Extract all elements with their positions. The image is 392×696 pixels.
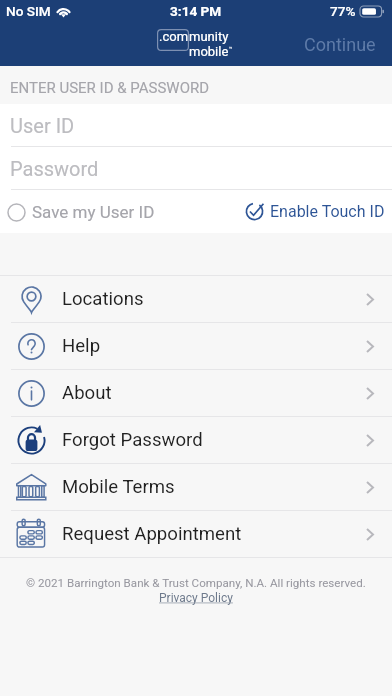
staticText: Privacy Policy [159,591,233,605]
button[interactable]: About [0,370,392,416]
staticText: ™ [229,45,233,52]
staticText: Mobile Terms [62,476,175,498]
staticText: Enable Touch ID [270,202,385,221]
button[interactable]: Request Appointment [0,511,392,557]
staticText: Help [62,335,101,357]
staticText: Request Appointment [62,523,242,545]
staticText: Locations [62,288,144,310]
staticText: Password [10,157,99,180]
button[interactable]: Mobile Terms [0,464,392,510]
staticText: .com [159,29,189,44]
staticText: Continue [304,34,376,55]
button[interactable]: User ID [0,104,392,146]
button[interactable]: Forgot Password [0,417,392,463]
staticText: mobile [189,44,229,59]
staticText: User ID [10,114,75,137]
button[interactable]: Enable Touch ID [245,202,392,221]
staticText: Forgot Password [62,429,203,451]
button[interactable]: Help [0,323,392,369]
button[interactable]: Privacy Policy [159,591,233,605]
button[interactable]: Password [0,147,392,189]
staticText: No SIM [6,3,51,19]
button[interactable]: Save my User ID [0,202,155,222]
staticText: 3:14 PM [170,3,222,19]
staticText: © 2021 Barrington Bank & Trust Company, … [26,576,366,590]
staticText: munity [189,29,229,44]
button[interactable]: Locations [0,276,392,322]
button[interactable]: Continue [286,24,392,65]
staticText: ENTER USER ID & PASSWORD [10,79,210,97]
staticText: About [62,382,112,404]
staticText: 77% [330,3,356,19]
staticText: Save my User ID [32,202,155,222]
